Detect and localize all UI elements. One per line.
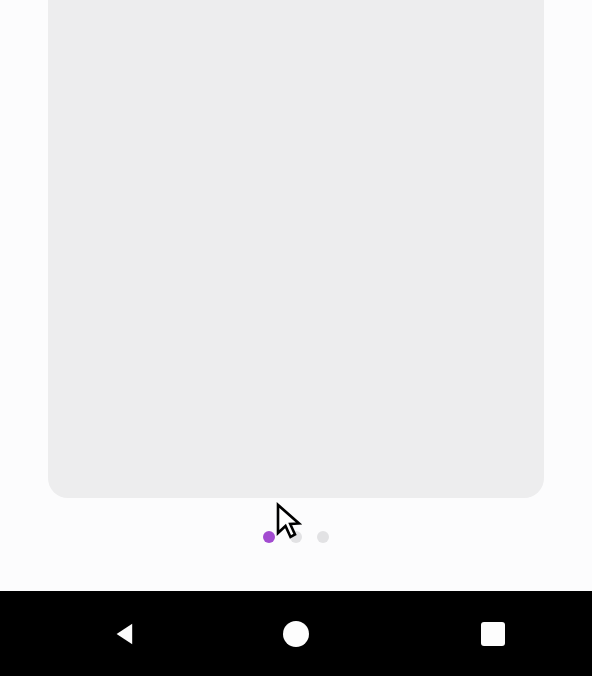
button[interactable]: Recent apps — [465, 606, 521, 662]
button[interactable]: Back — [97, 606, 153, 662]
button[interactable]: Current page — [261, 529, 277, 545]
button[interactable]: Go to page — [315, 529, 331, 545]
button[interactable]: Go to page — [288, 529, 304, 545]
button[interactable]: Home — [268, 606, 324, 662]
